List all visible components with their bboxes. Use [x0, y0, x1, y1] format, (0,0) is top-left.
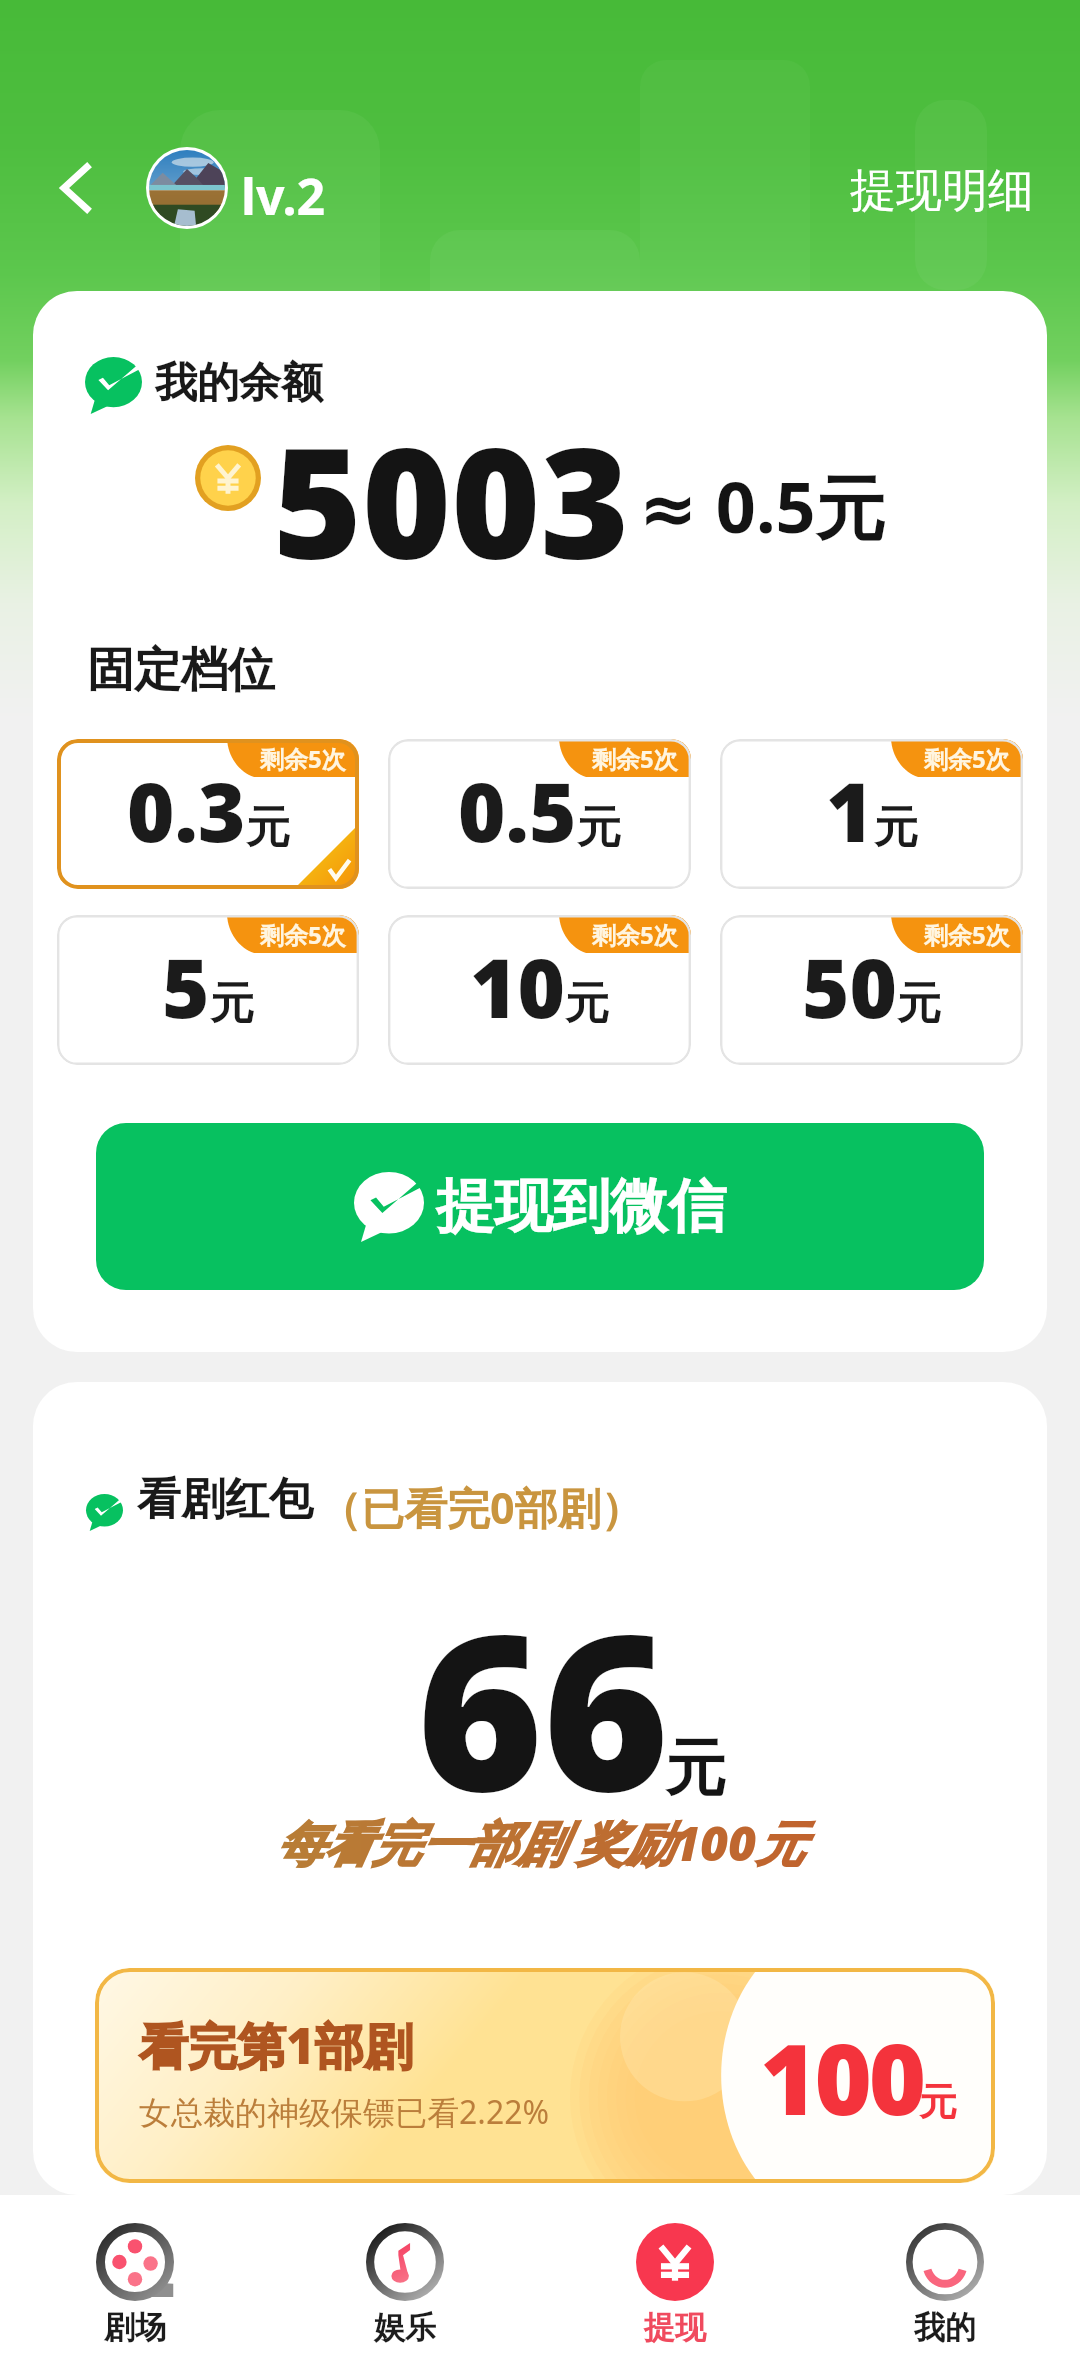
button[interactable]: 看完第1部剧 [95, 1968, 995, 2183]
staticText: 元 [874, 800, 918, 855]
button[interactable]: 提现明细 [822, 140, 1062, 242]
button[interactable]: Back [30, 143, 120, 233]
button[interactable]: 剩余5次 [57, 915, 359, 1065]
staticText: 100 [760, 2010, 924, 2143]
staticText: 我的余额 [155, 357, 323, 410]
staticText: 提现 [644, 2308, 706, 2347]
staticText: 元 [565, 976, 609, 1031]
button[interactable]: 提现到微信 [96, 1123, 984, 1290]
staticText: 每看完一部剧 奖励100元 [33, 1810, 1047, 1876]
staticText: 看剧红包 [137, 1472, 313, 1527]
staticText: 0.3 [127, 755, 246, 865]
button[interactable]: 我的 [810, 2195, 1080, 2376]
staticText: 元 [577, 800, 621, 855]
staticText: lv.2 [241, 162, 326, 230]
staticText: （已看完0部剧） [318, 1478, 644, 1537]
staticText: 剩余5次 [592, 742, 678, 775]
staticText: 剩余5次 [924, 918, 1010, 951]
staticText: 看完第1部剧 [139, 2012, 413, 2079]
button[interactable]: 剩余5次 [388, 915, 691, 1065]
staticText: 提现明细 [850, 162, 1034, 220]
staticText: 元 [246, 800, 290, 855]
staticText: 剩余5次 [260, 918, 346, 951]
staticText: 50 [802, 931, 897, 1041]
button[interactable]: 提现 [540, 2195, 810, 2376]
staticText: 娱乐 [374, 2308, 436, 2347]
staticText: 5 [162, 931, 210, 1041]
staticText: 元 [919, 2078, 957, 2126]
button[interactable]: Profile [146, 147, 228, 229]
staticText: 元 [210, 976, 254, 1031]
staticText: 66 [417, 1561, 669, 1854]
button[interactable]: 剧场 [0, 2195, 270, 2376]
staticText: 0.5 [458, 755, 577, 865]
staticText: 提现到微信 [436, 1170, 726, 1243]
button[interactable]: 娱乐 [270, 2195, 540, 2376]
staticText: 1 [826, 755, 874, 865]
button[interactable]: 剩余5次 [720, 915, 1023, 1065]
staticText: 固定档位 [87, 641, 275, 700]
staticText: 我的 [914, 2308, 976, 2347]
staticText: 剩余5次 [924, 742, 1010, 775]
button[interactable]: 剩余5次 [388, 739, 691, 889]
staticText: 元 [665, 1730, 726, 1807]
button[interactable]: 剩余5次 [57, 739, 359, 889]
staticText: 10 [470, 931, 565, 1041]
staticText: 剧场 [104, 2308, 166, 2347]
button[interactable]: 剩余5次 [720, 739, 1023, 889]
staticText: 5003 [273, 396, 630, 603]
staticText: 剩余5次 [260, 742, 346, 775]
staticText: 女总裁的神级保镖已看2.22% [139, 2090, 550, 2134]
staticText: ≈ 0.5元 [639, 458, 886, 554]
staticText: 剩余5次 [592, 918, 678, 951]
staticText: 元 [897, 976, 941, 1031]
